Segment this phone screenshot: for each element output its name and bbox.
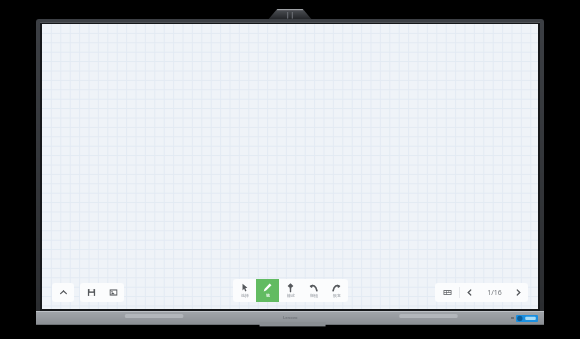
staticText: 撤销	[310, 293, 318, 298]
button[interactable]: Page overview	[435, 283, 459, 302]
button[interactable]: Select tool	[233, 279, 256, 302]
other: Camera	[267, 9, 313, 21]
staticText: 选择	[241, 293, 249, 298]
button[interactable]: Save	[80, 283, 102, 302]
button[interactable]: 1/16	[479, 283, 509, 302]
button[interactable]: Insert image	[102, 283, 124, 302]
staticText: 笔	[266, 293, 270, 298]
staticText: 1/16	[487, 288, 502, 298]
button[interactable]: Eraser tool	[279, 279, 302, 302]
button[interactable]: Expand toolbar	[52, 283, 74, 302]
button[interactable]: Pen tool	[256, 279, 279, 302]
button[interactable]: Undo	[302, 279, 325, 302]
staticText: 橡皮	[287, 293, 295, 298]
staticText: Lenovo	[283, 315, 298, 320]
staticText: 恢复	[333, 293, 341, 298]
button[interactable]: Next page	[509, 283, 528, 302]
button[interactable]: Redo	[325, 279, 348, 302]
button[interactable]: Previous page	[460, 283, 479, 302]
